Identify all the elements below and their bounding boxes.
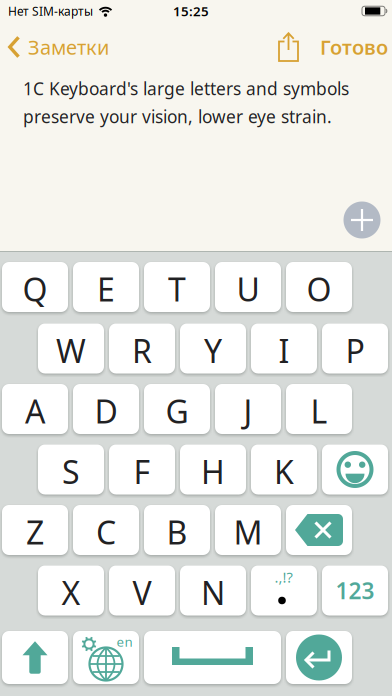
button[interactable]: J xyxy=(215,384,281,434)
button[interactable]: H xyxy=(180,444,246,494)
staticText: 123 xyxy=(335,575,374,605)
button[interactable]: V xyxy=(109,565,175,615)
staticText: M xyxy=(233,511,262,553)
button[interactable]: Numbers xyxy=(322,565,388,615)
button[interactable]: Next keyboard xyxy=(73,631,139,684)
staticText: H xyxy=(201,450,225,493)
button[interactable]: U xyxy=(215,262,281,312)
staticText: X xyxy=(61,571,80,614)
button[interactable]: Emoji xyxy=(322,444,388,494)
staticText: F xyxy=(133,450,150,493)
button[interactable]: I xyxy=(251,323,317,373)
button[interactable]: M xyxy=(215,505,281,555)
staticText: Z xyxy=(26,511,44,553)
staticText: 1C Keyboard's large letters and symbols xyxy=(23,77,349,100)
button[interactable]: T xyxy=(144,262,210,312)
staticText: preserve your vision, lower eye strain. xyxy=(23,105,332,128)
button[interactable]: Y xyxy=(180,323,246,373)
button[interactable]: Готово xyxy=(299,34,392,60)
staticText: 15:25 xyxy=(173,2,209,20)
button[interactable]: N xyxy=(180,565,246,615)
button[interactable]: K xyxy=(251,444,317,494)
staticText: T xyxy=(168,268,186,310)
button[interactable]: Space xyxy=(144,631,281,684)
button[interactable]: B xyxy=(144,505,210,555)
button[interactable]: X xyxy=(38,565,104,615)
staticText: N xyxy=(201,571,225,614)
staticText: I xyxy=(278,329,289,372)
staticText: B xyxy=(166,511,187,553)
staticText: Нет SIM-карты xyxy=(8,3,93,19)
button[interactable]: Заметки xyxy=(0,34,109,60)
staticText: D xyxy=(94,390,117,432)
button[interactable]: F xyxy=(109,444,175,494)
staticText: P xyxy=(345,329,364,372)
button[interactable]: Q xyxy=(2,262,68,312)
staticText: .,!? xyxy=(274,567,292,587)
staticText: G xyxy=(165,390,188,432)
staticText: S xyxy=(62,450,80,493)
button[interactable]: D xyxy=(73,384,139,434)
button[interactable]: Share xyxy=(278,32,299,62)
button[interactable]: C xyxy=(73,505,139,555)
staticText: A xyxy=(25,390,45,432)
button[interactable]: .,!? xyxy=(251,565,317,615)
staticText: L xyxy=(310,390,327,432)
staticText: K xyxy=(274,450,294,493)
staticText: Q xyxy=(22,268,47,310)
staticText: C xyxy=(96,511,116,553)
staticText: W xyxy=(56,329,86,372)
button[interactable]: S xyxy=(38,444,104,494)
button[interactable]: Z xyxy=(2,505,68,555)
button[interactable]: Shift xyxy=(2,631,68,684)
button[interactable]: L xyxy=(286,384,352,434)
button[interactable]: E xyxy=(73,262,139,312)
staticText: O xyxy=(306,268,331,310)
staticText: Y xyxy=(204,329,222,372)
button[interactable]: Return xyxy=(286,631,352,684)
button[interactable]: W xyxy=(38,323,104,373)
staticText: en xyxy=(116,633,132,650)
button[interactable]: A xyxy=(2,384,68,434)
button[interactable]: O xyxy=(286,262,352,312)
button[interactable]: Delete xyxy=(286,505,352,555)
button[interactable]: R xyxy=(109,323,175,373)
staticText: E xyxy=(97,268,115,310)
staticText: Готово xyxy=(320,34,388,60)
staticText: J xyxy=(243,390,252,432)
button[interactable]: P xyxy=(322,323,388,373)
staticText: Заметки xyxy=(28,34,109,60)
button[interactable]: Add xyxy=(343,201,380,238)
button[interactable]: G xyxy=(144,384,210,434)
staticText: U xyxy=(236,268,259,310)
staticText: V xyxy=(132,571,151,614)
staticText: R xyxy=(132,329,152,372)
